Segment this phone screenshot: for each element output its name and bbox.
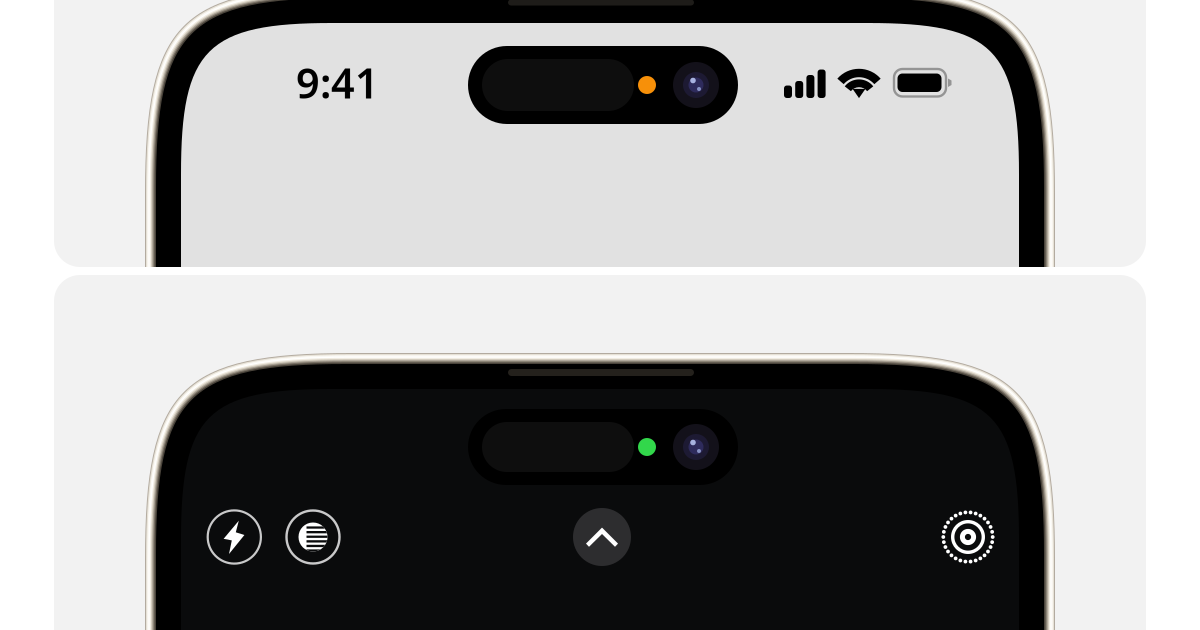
button[interactable]: Night mode [0,0,1200,630]
button[interactable]: Live Photo [0,0,1200,630]
button[interactable]: Camera options [0,0,1200,630]
staticText: 9:41 [296,55,379,110]
button[interactable]: Flash [0,0,1200,630]
